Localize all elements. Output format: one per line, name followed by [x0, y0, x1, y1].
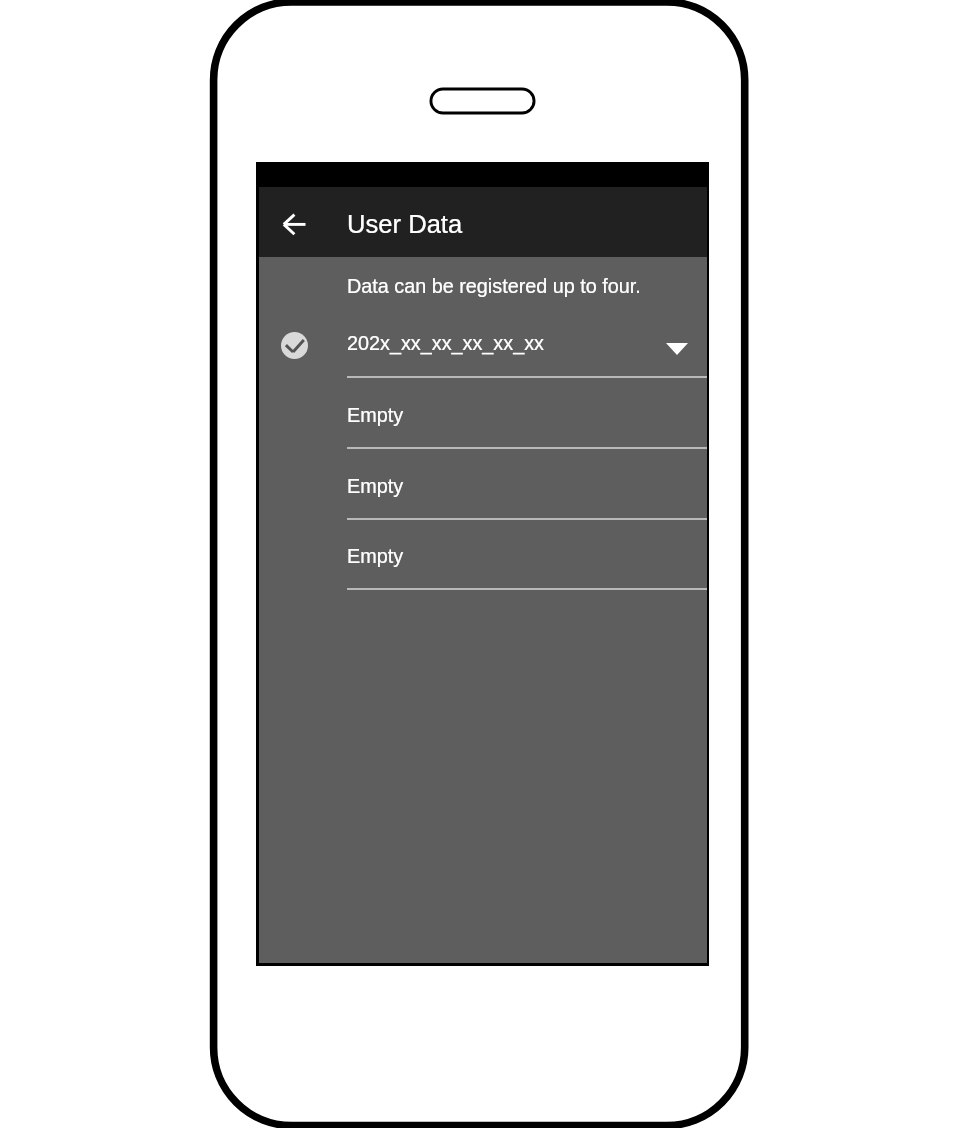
- staticText: Data can be registered up to four.: [347, 275, 641, 297]
- button[interactable]: 202x_xx_xx_xx_xx_xx: [259, 306, 707, 377]
- button[interactable]: Expand: [655, 324, 701, 370]
- staticText: User Data: [347, 210, 463, 239]
- button[interactable]: Selected entry: [281, 332, 308, 359]
- button[interactable]: Back: [265, 198, 323, 246]
- button[interactable]: Empty: [259, 448, 707, 519]
- staticText: Empty: [347, 545, 404, 567]
- button[interactable]: Empty: [259, 518, 707, 589]
- staticText: Empty: [347, 475, 404, 497]
- staticText: 202x_xx_xx_xx_xx_xx: [347, 332, 544, 354]
- button[interactable]: Empty: [259, 377, 707, 448]
- staticText: Empty: [347, 404, 404, 426]
